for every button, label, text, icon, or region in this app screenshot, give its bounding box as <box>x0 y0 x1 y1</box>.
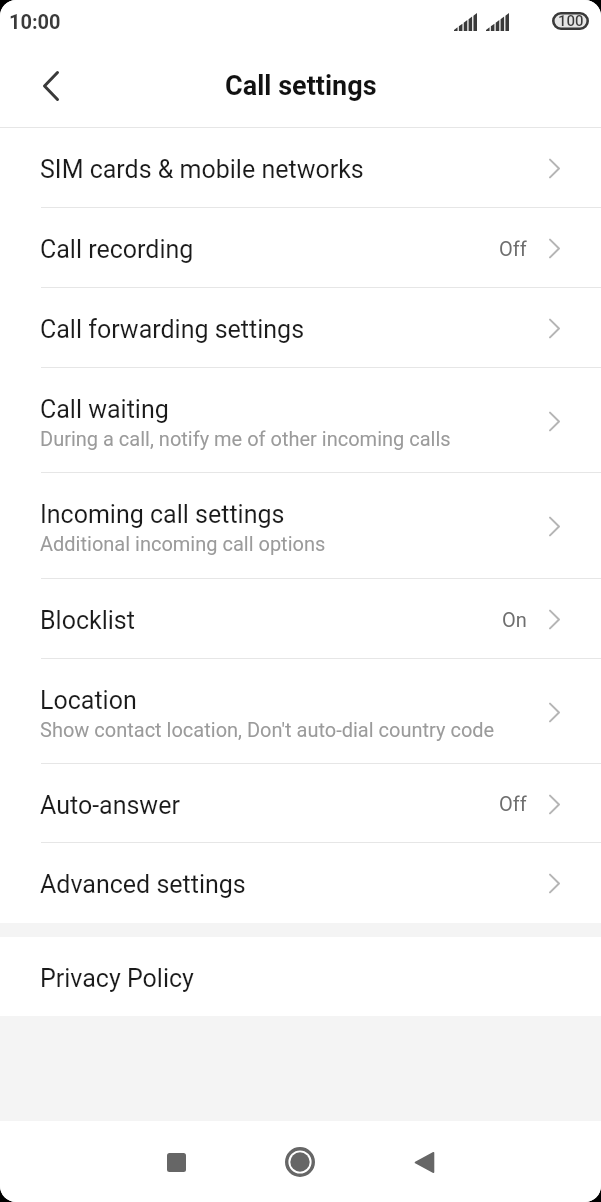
button[interactable]: Auto-answer <box>0 764 601 843</box>
staticText: Show contact location, Don't auto-dial c… <box>40 718 495 741</box>
staticText: Off <box>499 792 527 815</box>
button[interactable]: Back <box>386 1124 462 1200</box>
staticText: Additional incoming call options <box>40 532 326 555</box>
staticText: Incoming call settings <box>40 500 285 529</box>
staticText: 100 <box>558 12 584 29</box>
staticText: Call settings <box>225 70 377 102</box>
staticText: Off <box>499 237 527 260</box>
staticText: SIM cards & mobile networks <box>40 155 364 184</box>
button[interactable]: Advanced settings <box>0 843 601 923</box>
staticText: Blocklist <box>40 606 135 635</box>
button[interactable]: SIM cards & mobile networks <box>0 128 601 208</box>
button[interactable]: Blocklist <box>0 579 601 659</box>
staticText: Location <box>40 686 137 715</box>
staticText: Auto-answer <box>40 791 180 820</box>
button[interactable]: Call forwarding settings <box>0 288 601 368</box>
staticText: Call waiting <box>40 395 169 424</box>
button[interactable]: Incoming call settings <box>0 473 601 579</box>
button[interactable]: Back <box>23 58 79 114</box>
staticText: On <box>502 608 527 631</box>
staticText: Call recording <box>40 235 194 264</box>
button[interactable]: Privacy Policy <box>0 937 601 1016</box>
staticText: Privacy Policy <box>40 964 194 993</box>
staticText: 10:00 <box>9 10 61 33</box>
button[interactable]: Call waiting <box>0 368 601 473</box>
button[interactable]: Call recording <box>0 208 601 288</box>
staticText: During a call, notify me of other incomi… <box>40 427 451 450</box>
staticText: Advanced settings <box>40 870 246 899</box>
button[interactable]: Recent apps <box>138 1124 214 1200</box>
button[interactable]: Location <box>0 659 601 764</box>
staticText: Call forwarding settings <box>40 315 305 344</box>
button[interactable]: Home <box>262 1124 338 1200</box>
